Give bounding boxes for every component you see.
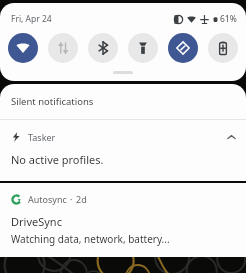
staticText: Watching data, network, battery...: [11, 232, 170, 246]
staticText: ·: [70, 193, 73, 205]
staticText: Fri, Apr 24: [11, 13, 52, 25]
button[interactable]: Silent notifications: [0, 84, 246, 119]
staticText: 61%: [220, 13, 237, 25]
button[interactable]: Wi-Fi: [8, 33, 38, 63]
button[interactable]: Mobile data: [48, 33, 78, 63]
button[interactable]: Collapse: [225, 131, 237, 143]
button[interactable]: Battery Saver: [208, 33, 238, 63]
button[interactable]: Auto-rotate: [168, 33, 198, 63]
staticText: No active profiles.: [11, 152, 104, 167]
button[interactable]: Autosync: [0, 183, 246, 257]
button[interactable]: Flashlight: [128, 33, 158, 63]
staticText: Tasker: [28, 131, 56, 143]
staticText: Autosync: [28, 193, 67, 205]
button[interactable]: Tasker: [0, 120, 246, 181]
button[interactable]: Manage: [0, 270, 67, 273]
staticText: 2d: [76, 193, 87, 205]
staticText: DriveSync: [11, 214, 62, 229]
staticText: Silent notifications: [11, 95, 94, 108]
button[interactable]: Bluetooth: [88, 33, 118, 63]
